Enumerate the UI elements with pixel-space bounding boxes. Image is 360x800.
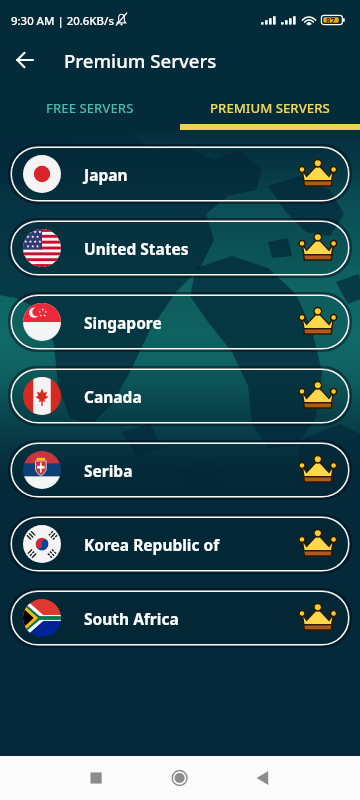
button[interactable]: FREE SERVERS <box>0 90 180 131</box>
staticText: Korea Republic of <box>84 534 220 555</box>
staticText: Singapore <box>84 312 162 333</box>
button[interactable]: PREMIUM SERVERS <box>180 90 360 131</box>
button[interactable]: United States <box>10 220 350 276</box>
button[interactable]: Japan <box>10 146 350 202</box>
staticText: Seriba <box>84 460 133 481</box>
button[interactable]: Singapore <box>10 294 350 350</box>
staticText: Premium Servers <box>64 48 217 73</box>
staticText: PREMIUM SERVERS <box>210 99 330 117</box>
staticText: 9:30 AM | 20.6KB/s <box>11 13 114 29</box>
button[interactable]: Seriba <box>10 442 350 498</box>
button[interactable]: Canada <box>10 368 350 424</box>
button[interactable]: South Africa <box>10 590 350 646</box>
staticText: 87 <box>326 15 336 26</box>
staticText: Canada <box>84 386 142 407</box>
staticText: South Africa <box>84 608 179 629</box>
staticText: United States <box>84 238 189 259</box>
staticText: FREE SERVERS <box>46 99 134 117</box>
button[interactable]: Korea Republic of <box>10 516 350 572</box>
button[interactable]: Back <box>9 44 41 76</box>
staticText: Japan <box>84 164 128 185</box>
